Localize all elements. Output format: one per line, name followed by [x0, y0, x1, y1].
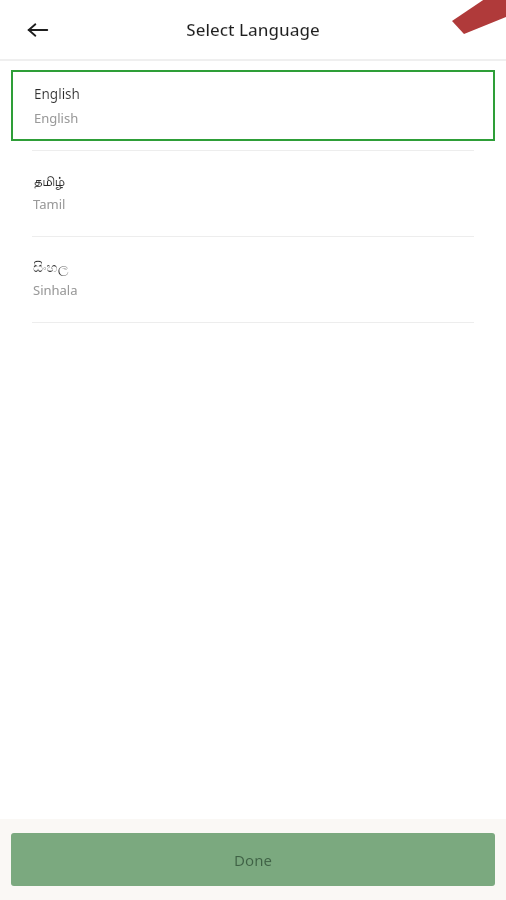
staticText: Sinhala — [33, 281, 78, 299]
staticText: English — [34, 109, 79, 127]
staticText: English — [34, 85, 80, 103]
staticText: සිංහල — [33, 261, 69, 275]
button[interactable]: සිංහල — [0, 237, 506, 322]
button[interactable]: தமிழ் — [0, 151, 506, 236]
button[interactable]: English — [11, 70, 495, 141]
staticText: Select Language — [186, 18, 320, 41]
staticText: Tamil — [33, 195, 66, 213]
button[interactable]: Back — [18, 10, 58, 50]
button[interactable]: Done — [11, 833, 495, 886]
staticText: தமிழ் — [33, 175, 65, 189]
staticText: Done — [234, 850, 272, 870]
